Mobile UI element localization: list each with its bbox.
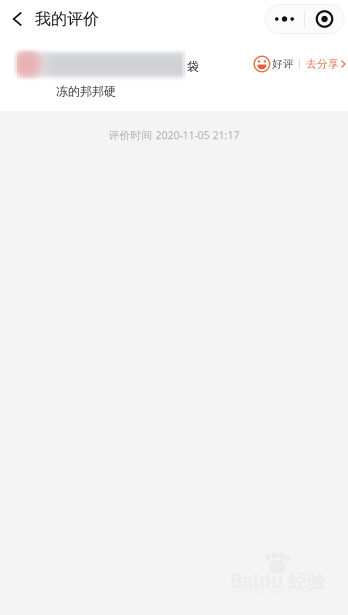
button[interactable]: 好评	[254, 49, 346, 79]
staticText: 好评	[272, 57, 294, 70]
staticText: Baidu 经验	[230, 568, 326, 593]
button[interactable]: More	[265, 4, 304, 33]
staticText: 我的评价	[35, 9, 99, 29]
button[interactable]: Close	[305, 4, 344, 33]
button[interactable]: Back	[0, 0, 35, 38]
staticText: 袋	[187, 59, 199, 74]
staticText: 冻的邦邦硬	[56, 84, 116, 99]
staticText: 评价时间 2020-11-05 21:17	[108, 128, 239, 142]
staticText: 去分享	[306, 57, 339, 70]
